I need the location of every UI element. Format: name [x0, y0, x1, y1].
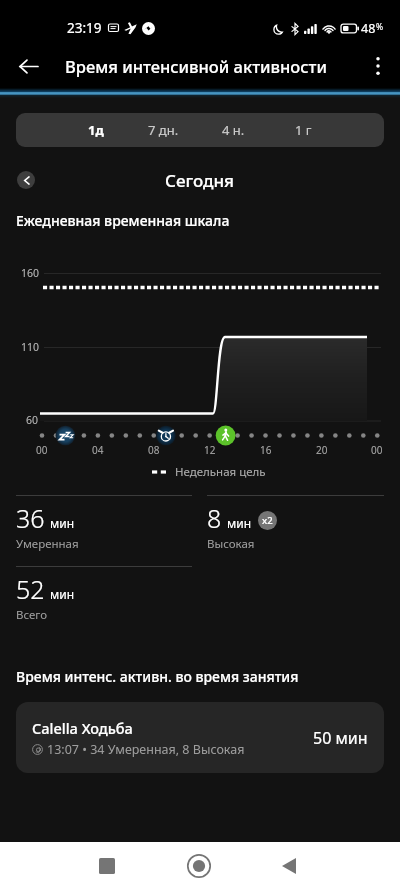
staticText: мин: [227, 515, 252, 531]
staticText: 50 мин: [313, 727, 368, 749]
staticText: 1д: [88, 121, 104, 139]
button[interactable]: 4 н.: [199, 113, 268, 147]
staticText: 160: [21, 266, 40, 280]
staticText: 00: [36, 443, 48, 457]
staticText: 8: [207, 501, 222, 535]
button[interactable]: Home: [179, 846, 219, 886]
staticText: Время интенс. активн. во время занятия: [16, 667, 299, 686]
staticText: 48: [361, 20, 376, 37]
staticText: 1 г: [295, 121, 312, 139]
staticText: Calella Ходьба: [32, 718, 133, 738]
staticText: 20: [316, 443, 328, 457]
staticText: x2: [262, 514, 273, 527]
staticText: 08: [148, 443, 160, 457]
staticText: Сегодня: [165, 169, 235, 192]
staticText: 7 дн.: [148, 121, 179, 139]
staticText: 16: [260, 443, 272, 457]
staticText: 36: [16, 501, 45, 535]
button[interactable]: Recents: [87, 846, 127, 886]
staticText: 110: [21, 340, 40, 354]
staticText: Умеренная: [16, 536, 79, 552]
staticText: Время интенсивной активности: [65, 55, 327, 77]
staticText: 00: [371, 443, 383, 457]
button[interactable]: 1 г: [269, 113, 338, 147]
staticText: %: [376, 21, 384, 33]
staticText: Высокая: [207, 536, 255, 552]
staticText: 12: [204, 443, 216, 457]
staticText: Недельная цель: [175, 464, 266, 480]
button[interactable]: 1д: [61, 113, 130, 147]
button[interactable]: Back: [269, 846, 309, 886]
button[interactable]: Calella Ходьба: [16, 702, 384, 773]
staticText: 23:19: [67, 19, 102, 37]
staticText: 04: [92, 443, 104, 457]
button[interactable]: Previous day: [17, 171, 35, 189]
staticText: 52: [16, 572, 45, 606]
button[interactable]: Back: [2, 40, 54, 92]
staticText: Всего: [16, 607, 48, 623]
button[interactable]: More options: [352, 40, 400, 92]
staticText: Ежедневная временная шкала: [16, 211, 230, 230]
button[interactable]: 7 дн.: [129, 113, 198, 147]
staticText: 60: [26, 413, 39, 427]
staticText: мин: [50, 515, 75, 531]
staticText: 4 н.: [222, 121, 245, 139]
staticText: мин: [50, 586, 75, 602]
staticText: 13:07 • 34 Умеренная, 8 Высокая: [47, 741, 245, 758]
